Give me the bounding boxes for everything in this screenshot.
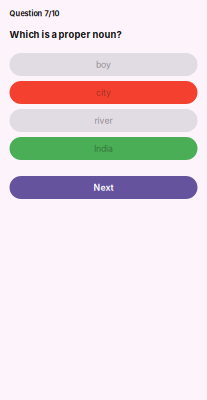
staticText: Next xyxy=(93,182,113,193)
button[interactable]: Next xyxy=(9,176,197,199)
button[interactable]: boy xyxy=(9,53,197,76)
button[interactable]: city xyxy=(9,81,197,104)
staticText: river xyxy=(94,115,112,126)
staticText: India xyxy=(94,143,113,154)
staticText: city xyxy=(96,87,111,98)
button[interactable]: river xyxy=(9,109,197,132)
staticText: Which is a proper noun? xyxy=(9,29,121,40)
staticText: Question 7/10 xyxy=(9,9,59,18)
staticText: boy xyxy=(96,59,111,70)
button[interactable]: India xyxy=(9,137,197,160)
